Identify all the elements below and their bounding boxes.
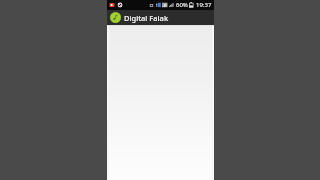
staticText: 19:37 [196, 1, 212, 9]
staticText: 60% [176, 1, 188, 9]
button[interactable]: Digital Falak [107, 10, 214, 25]
button[interactable]: Empty content [107, 25, 214, 180]
staticText: Digital Falak [124, 13, 169, 23]
